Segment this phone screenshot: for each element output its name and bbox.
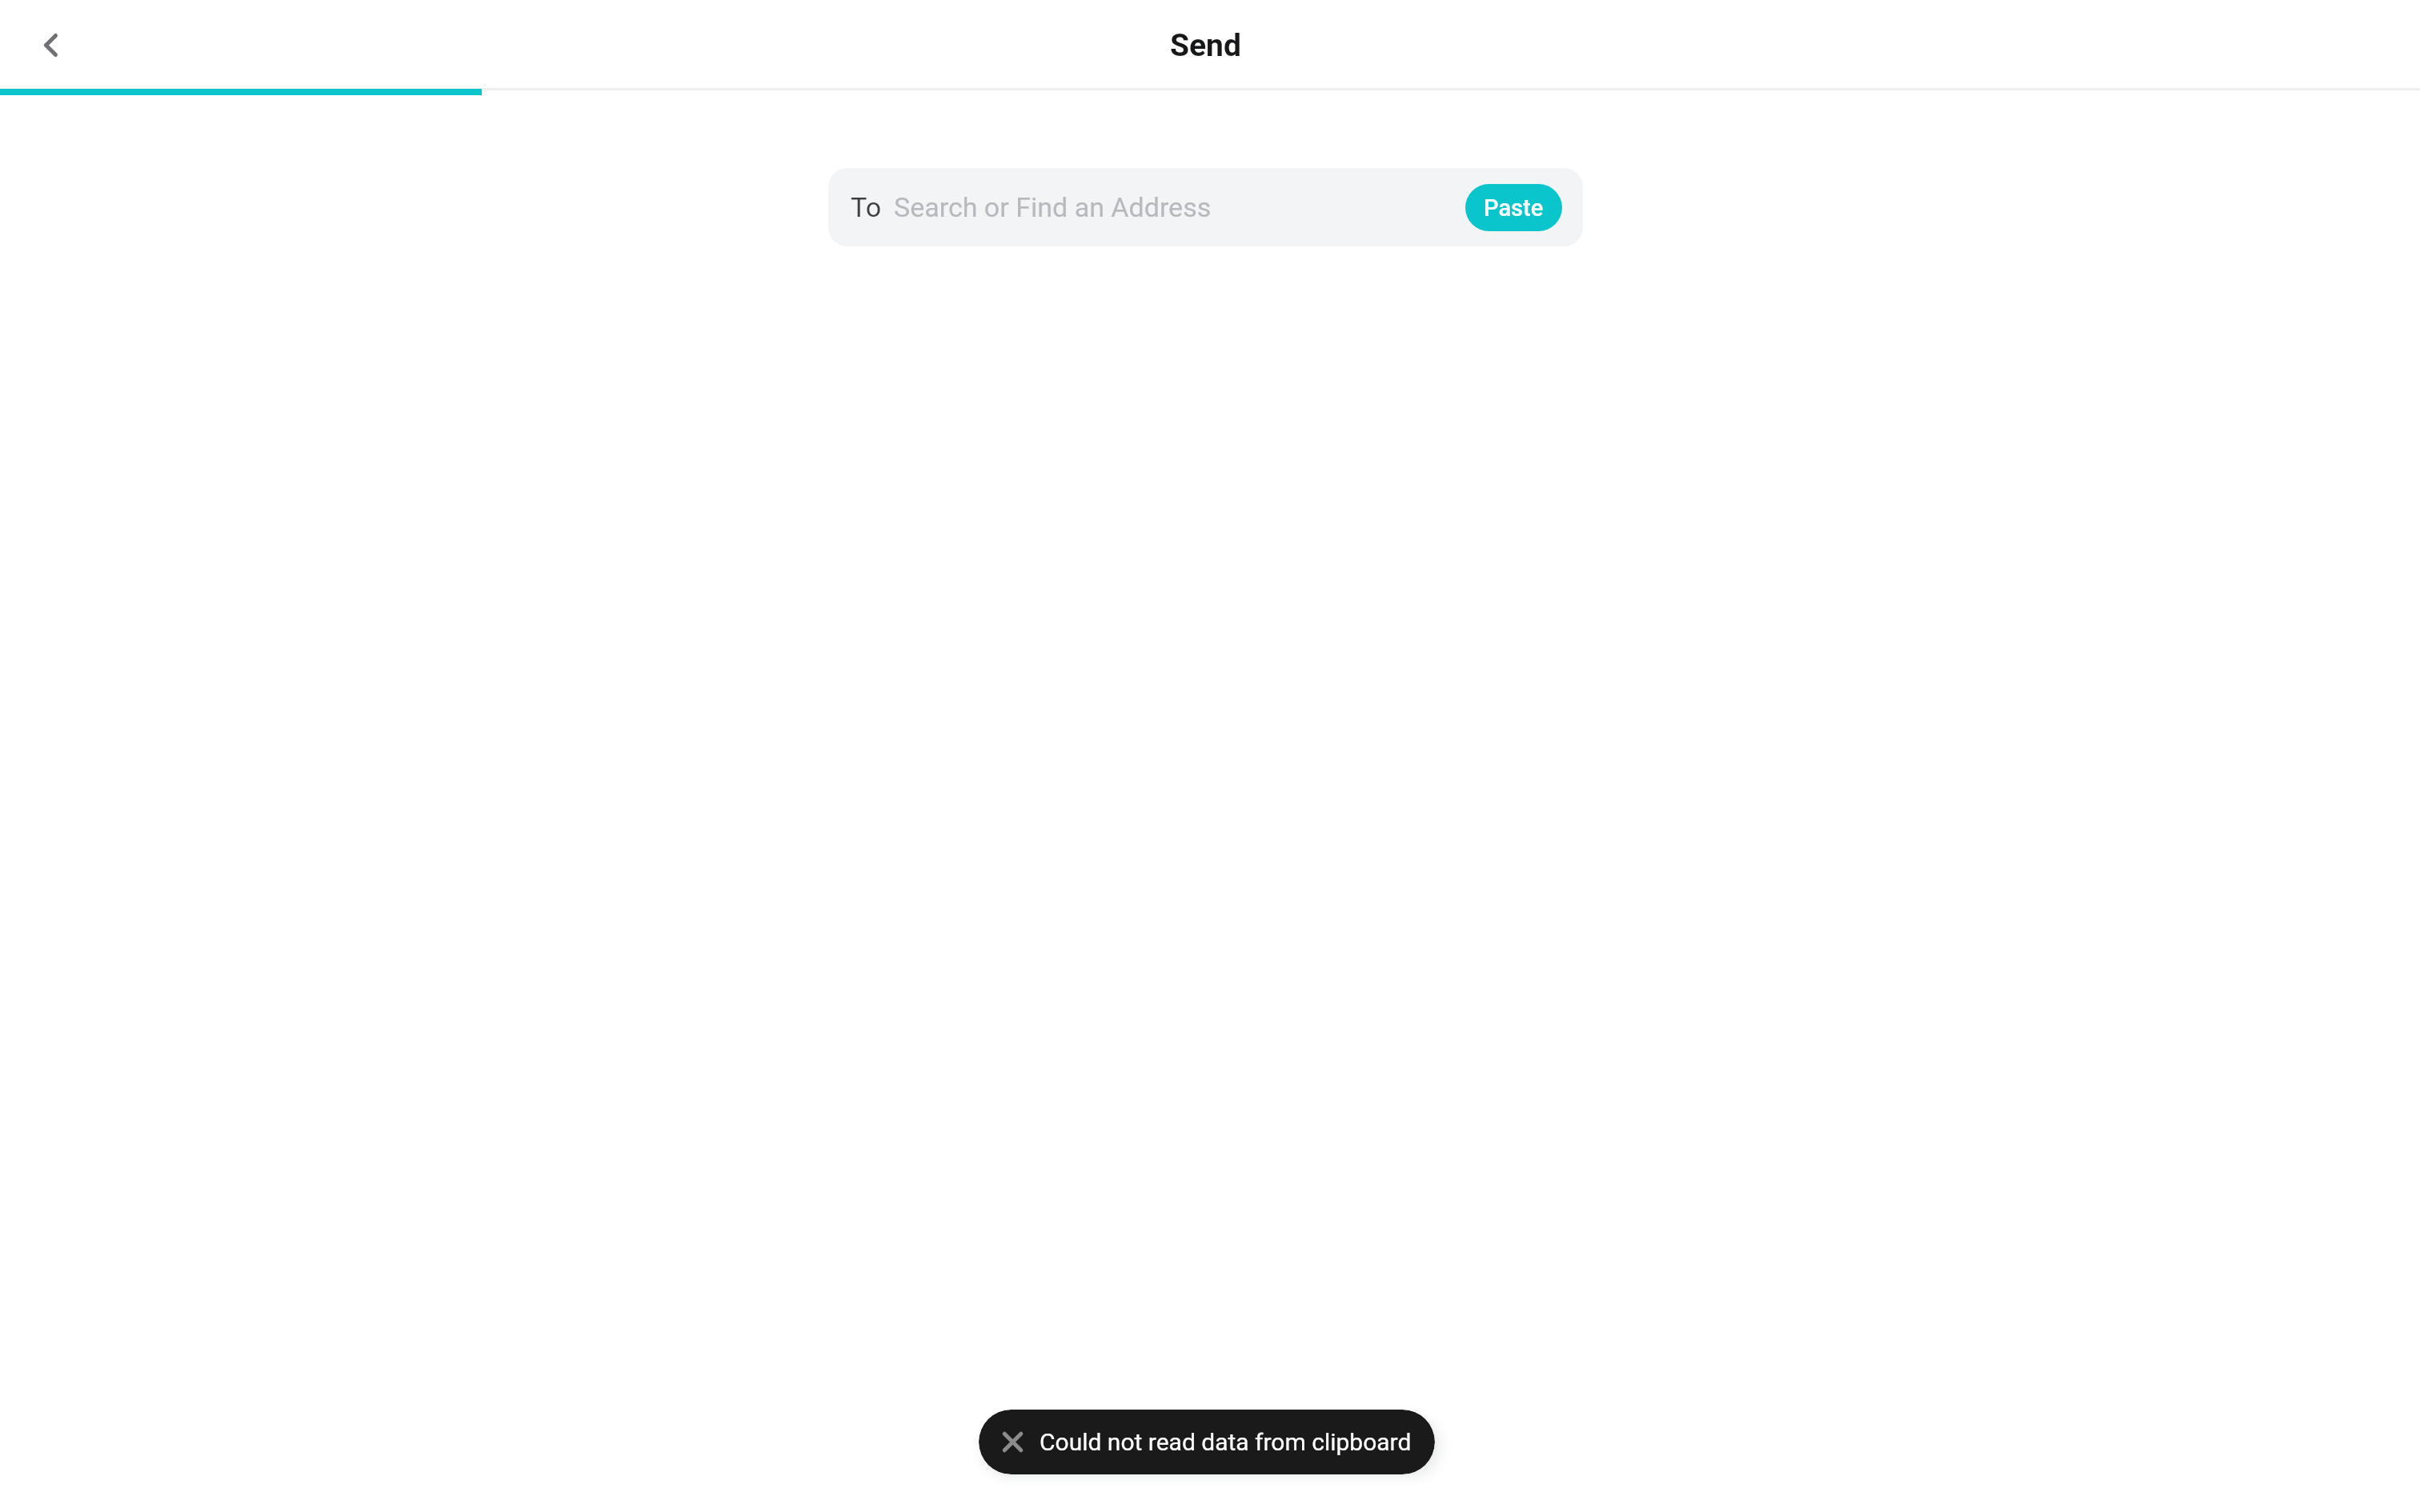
- button[interactable]: Back: [18, 18, 71, 70]
- button[interactable]: To: [828, 168, 1583, 246]
- staticText: To: [851, 191, 882, 223]
- staticText: Search or Find an Address: [894, 191, 1212, 223]
- button[interactable]: Dismiss: [979, 1410, 1435, 1474]
- staticText: Paste: [1484, 194, 1544, 222]
- staticText: Send: [1170, 27, 1241, 64]
- other: Dismiss: [1003, 1432, 1023, 1452]
- staticText: Could not read data from clipboard: [1040, 1428, 1412, 1456]
- button[interactable]: Paste: [1465, 184, 1562, 231]
